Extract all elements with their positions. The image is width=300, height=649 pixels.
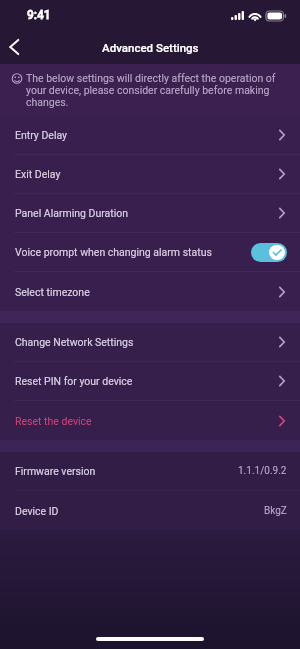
button[interactable]: Reset the device xyxy=(0,401,300,440)
staticText: Exit Delay xyxy=(15,168,61,180)
staticText: BkgZ xyxy=(264,505,287,517)
staticText: Reset the device xyxy=(15,415,92,427)
staticText: Reset PIN for your device xyxy=(15,375,133,387)
button[interactable]: Back xyxy=(0,32,30,62)
staticText: Panel Alarming Duration xyxy=(15,207,129,219)
staticText: Firmware version xyxy=(15,465,96,477)
button[interactable]: Select timezone xyxy=(0,272,300,311)
staticText: Change Network Settings xyxy=(15,336,134,348)
button[interactable]: Entry Delay xyxy=(0,116,300,155)
button[interactable]: Device ID xyxy=(0,491,300,530)
staticText: Entry Delay xyxy=(15,129,68,141)
staticText: The below settings will directly affect … xyxy=(26,72,288,108)
button[interactable]: Panel Alarming Duration xyxy=(0,194,300,233)
staticText: Advanced Settings xyxy=(102,41,199,54)
button[interactable]: Reset PIN for your device xyxy=(0,362,300,401)
staticText: Voice prompt when changing alarm status xyxy=(15,246,212,258)
button[interactable]: Firmware version xyxy=(0,452,300,491)
button[interactable]: Exit Delay xyxy=(0,155,300,194)
staticText: Device ID xyxy=(15,505,59,517)
staticText: 1.1.1/0.9.2 xyxy=(238,465,287,477)
button[interactable]: Voice prompt when changing alarm status xyxy=(0,233,300,272)
staticText: 9:41 xyxy=(27,8,51,22)
staticText: Select timezone xyxy=(15,286,90,298)
button[interactable]: Change Network Settings xyxy=(0,323,300,362)
